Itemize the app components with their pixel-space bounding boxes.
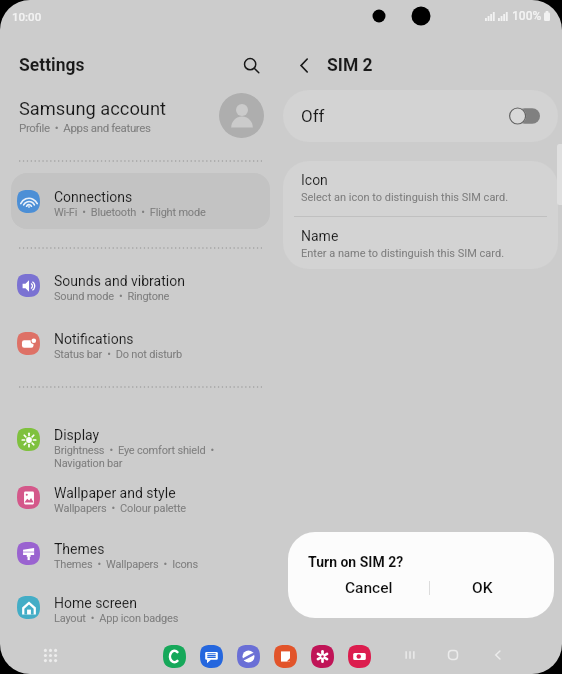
button[interactable]: Gallery	[311, 645, 334, 668]
button[interactable]: Home screen	[11, 579, 270, 635]
button[interactable]: Apps	[37, 642, 63, 668]
button[interactable]: Search	[234, 48, 268, 82]
staticText: 100%	[512, 9, 542, 23]
staticText: Display	[54, 427, 100, 443]
button[interactable]: Home	[440, 642, 466, 668]
button[interactable]: Themes	[11, 525, 270, 581]
button[interactable]: Recents	[397, 642, 423, 668]
button[interactable]: OK	[430, 570, 554, 606]
button[interactable]: Internet	[237, 645, 260, 668]
button[interactable]: Connections	[11, 173, 270, 229]
button[interactable]: Turn on SIM 2	[509, 107, 540, 125]
staticText: Select an icon to distinguish this SIM c…	[301, 191, 509, 204]
staticText: Notifications	[54, 331, 134, 347]
button[interactable]: Samsung account	[0, 92, 281, 139]
staticText: Samsung account	[19, 98, 167, 119]
staticText: SIM 2	[327, 55, 373, 76]
staticText: Wi-Fi • Bluetooth • Flight mode	[54, 206, 206, 219]
staticText: Wallpapers • Colour palette	[54, 502, 186, 515]
button[interactable]: Off	[283, 90, 558, 142]
button[interactable]: Name	[283, 217, 558, 269]
staticText: Home screen	[54, 595, 137, 611]
staticText: Themes • Wallpapers • Icons	[54, 558, 198, 571]
button[interactable]: Phone	[163, 645, 186, 668]
button[interactable]: Wallpaper and style	[11, 469, 270, 525]
button[interactable]: Notifications	[11, 315, 270, 371]
button[interactable]: Notes	[274, 645, 297, 668]
staticText: Sounds and vibration	[54, 273, 185, 289]
button[interactable]: Camera	[348, 645, 371, 668]
staticText: Brightness • Eye comfort shield • Naviga…	[54, 444, 214, 470]
staticText: Turn on SIM 2?	[308, 554, 404, 570]
button[interactable]: Sounds and vibration	[11, 257, 270, 313]
staticText: Status bar • Do not disturb	[54, 348, 182, 361]
button[interactable]: Back	[485, 642, 511, 668]
staticText: Icon	[301, 172, 328, 188]
staticText: Layout • App icon badges	[54, 612, 179, 625]
staticText: Wallpaper and style	[54, 485, 176, 501]
button[interactable]: Cancel	[288, 570, 429, 606]
staticText: Sound mode • Ringtone	[54, 290, 170, 303]
button[interactable]: Back	[287, 48, 321, 82]
staticText: Themes	[54, 541, 105, 557]
staticText: Settings	[19, 55, 85, 76]
staticText: Cancel	[345, 579, 393, 597]
staticText: 10:00	[12, 10, 42, 23]
staticText: Connections	[54, 189, 133, 205]
staticText: Profile • Apps and features	[19, 121, 151, 134]
staticText: Off	[301, 106, 509, 126]
button[interactable]: Display	[11, 411, 270, 467]
staticText: OK	[472, 579, 493, 597]
staticText: Name	[301, 228, 339, 244]
staticText: Enter a name to distinguish this SIM car…	[301, 247, 505, 260]
button[interactable]: Icon	[283, 161, 558, 216]
button[interactable]: Messages	[200, 645, 223, 668]
